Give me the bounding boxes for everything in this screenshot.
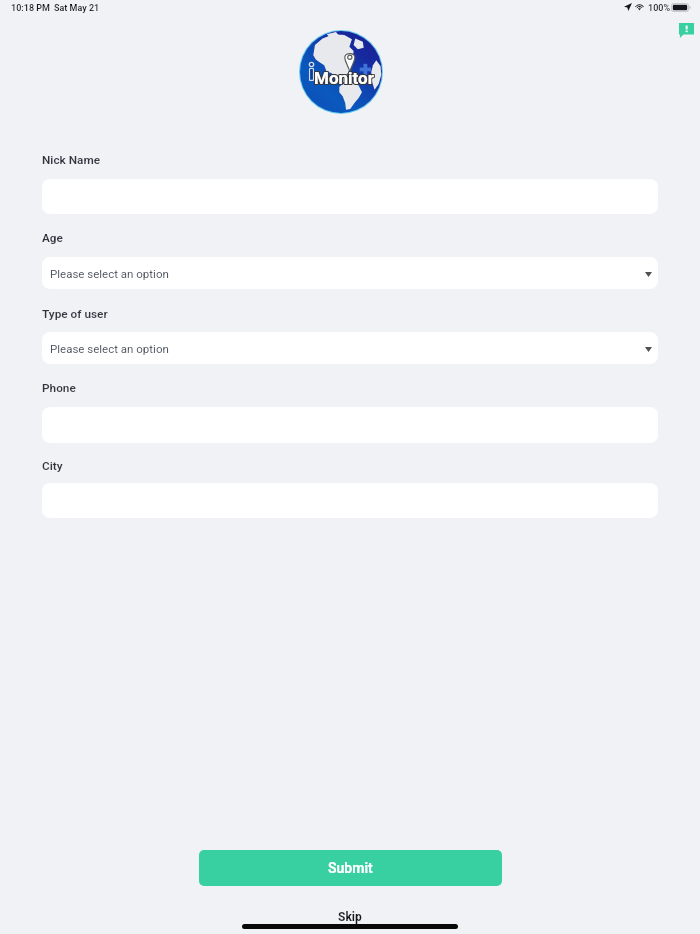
staticText: Monitor xyxy=(315,67,375,87)
staticText: Submit xyxy=(328,860,373,876)
staticText: Monitor xyxy=(313,69,373,89)
staticText: Monitor xyxy=(315,69,375,89)
staticText: Please select an option xyxy=(50,267,169,280)
staticText: Monitor xyxy=(315,68,375,88)
staticText: Sat May 21 xyxy=(54,3,100,14)
staticText: Skip xyxy=(338,910,362,924)
staticText: Nick Name xyxy=(42,153,100,167)
button[interactable]: Please select an option xyxy=(42,332,658,364)
staticText: Monitor xyxy=(314,68,374,88)
staticText: Age xyxy=(42,231,63,245)
button[interactable]: Notifications xyxy=(679,23,694,38)
staticText: 10:18 PM xyxy=(11,3,50,14)
button[interactable]: Please select an option xyxy=(42,257,658,289)
button[interactable]: Submit xyxy=(199,850,502,886)
staticText: City xyxy=(42,459,63,473)
staticText: Type of user xyxy=(42,307,108,321)
staticText: Monitor xyxy=(314,69,374,89)
staticText: Please select an option xyxy=(50,342,169,355)
staticText: 100% xyxy=(648,3,671,14)
staticText: Monitor xyxy=(313,68,373,88)
button[interactable]: Skip xyxy=(325,908,375,930)
staticText: Monitor xyxy=(313,67,373,87)
staticText: Phone xyxy=(42,381,76,395)
staticText: Monitor xyxy=(314,67,374,87)
